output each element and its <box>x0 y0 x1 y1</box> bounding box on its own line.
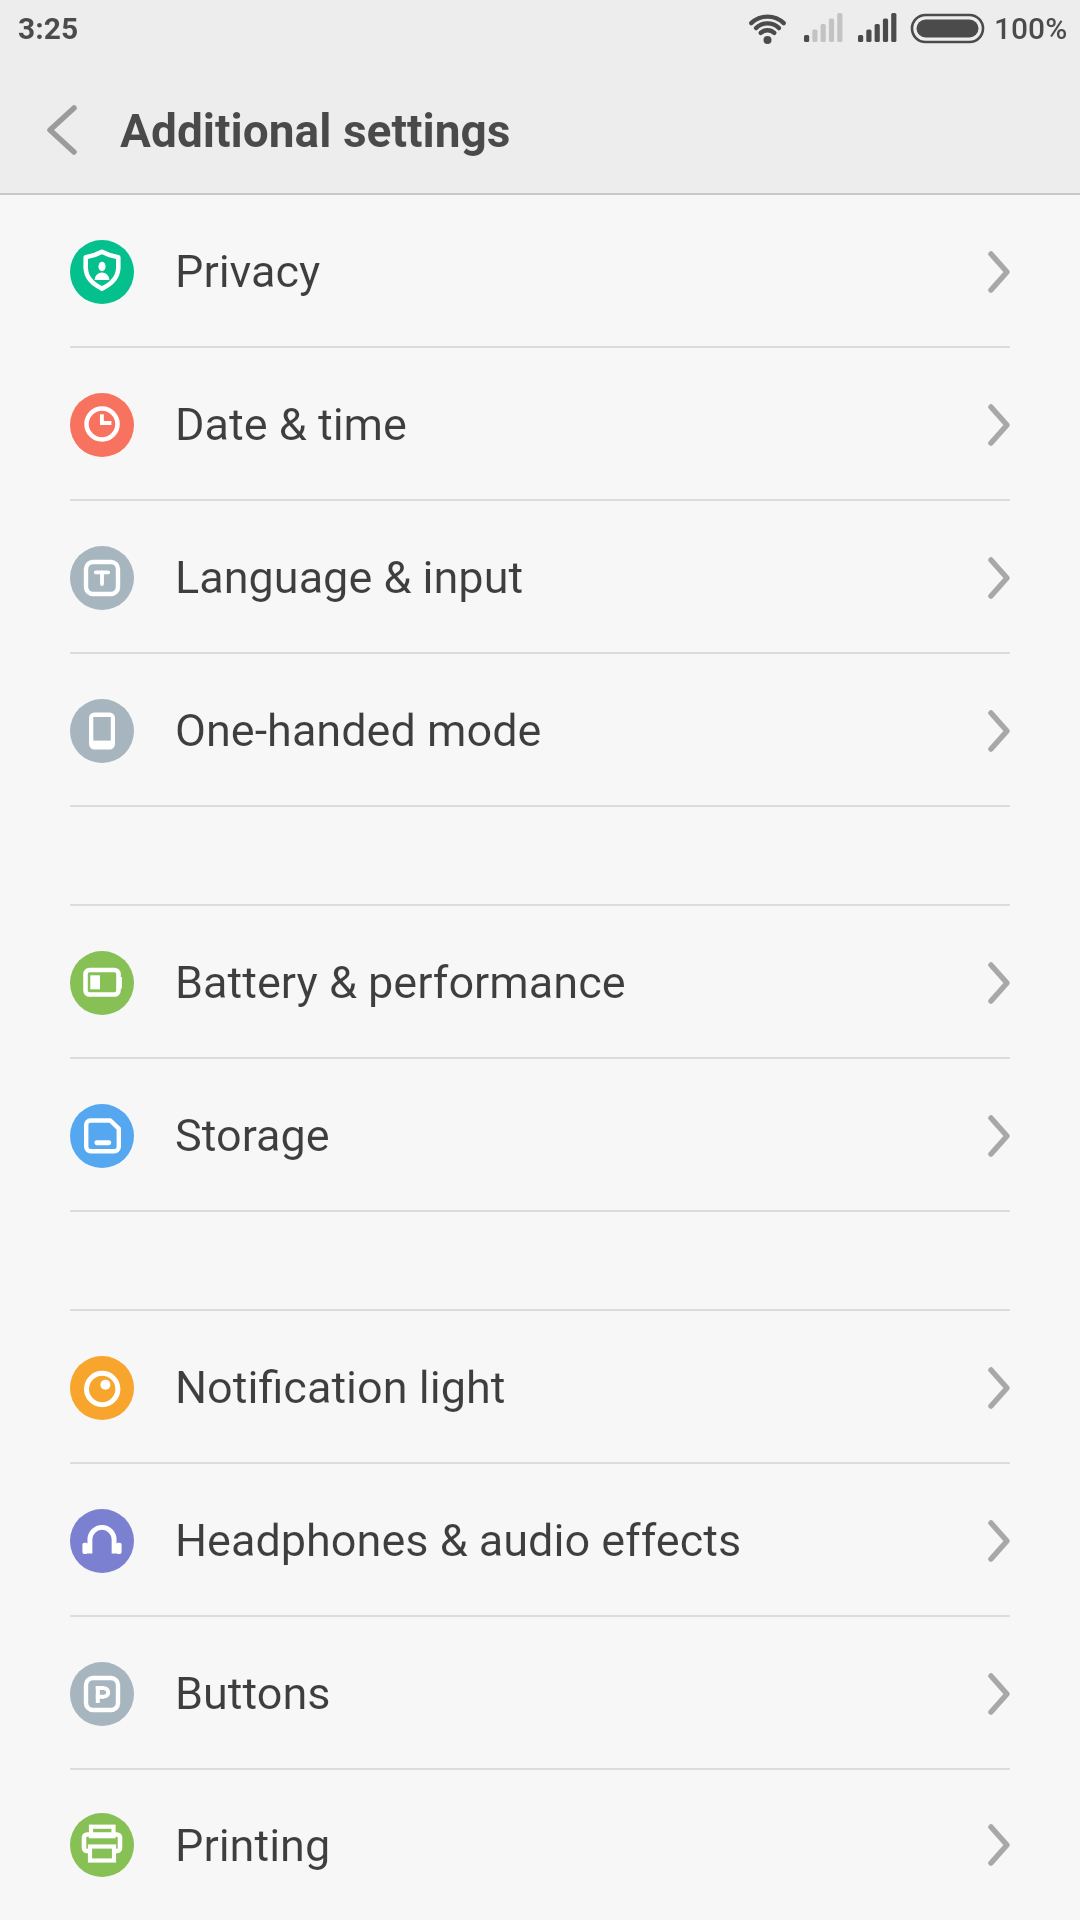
button[interactable]: Headphones & audio effects <box>0 1464 1080 1617</box>
staticText: Language & input <box>175 551 524 604</box>
button[interactable]: Buttons <box>0 1617 1080 1770</box>
staticText: Headphones & audio effects <box>175 1514 742 1567</box>
staticText: Additional settings <box>120 104 511 158</box>
staticText: 100% <box>994 11 1068 46</box>
button[interactable]: Printing <box>0 1770 1080 1920</box>
button[interactable]: Date & time <box>0 348 1080 501</box>
button[interactable]: Storage <box>0 1059 1080 1212</box>
staticText: Notification light <box>175 1361 506 1414</box>
button[interactable]: Battery & performance <box>0 906 1080 1059</box>
button[interactable]: Notification light <box>0 1311 1080 1464</box>
button[interactable]: Language & input <box>0 501 1080 654</box>
button[interactable]: One-handed mode <box>0 654 1080 807</box>
staticText: Battery & performance <box>175 956 626 1009</box>
staticText: Buttons <box>175 1667 331 1720</box>
button[interactable] <box>30 94 100 164</box>
staticText: Storage <box>175 1109 330 1162</box>
button[interactable]: Privacy <box>0 195 1080 348</box>
staticText: Date & time <box>175 398 407 451</box>
staticText: One-handed mode <box>175 704 542 757</box>
staticText: 3:25 <box>18 11 79 46</box>
staticText: Printing <box>175 1819 331 1872</box>
staticText: Privacy <box>175 245 321 298</box>
